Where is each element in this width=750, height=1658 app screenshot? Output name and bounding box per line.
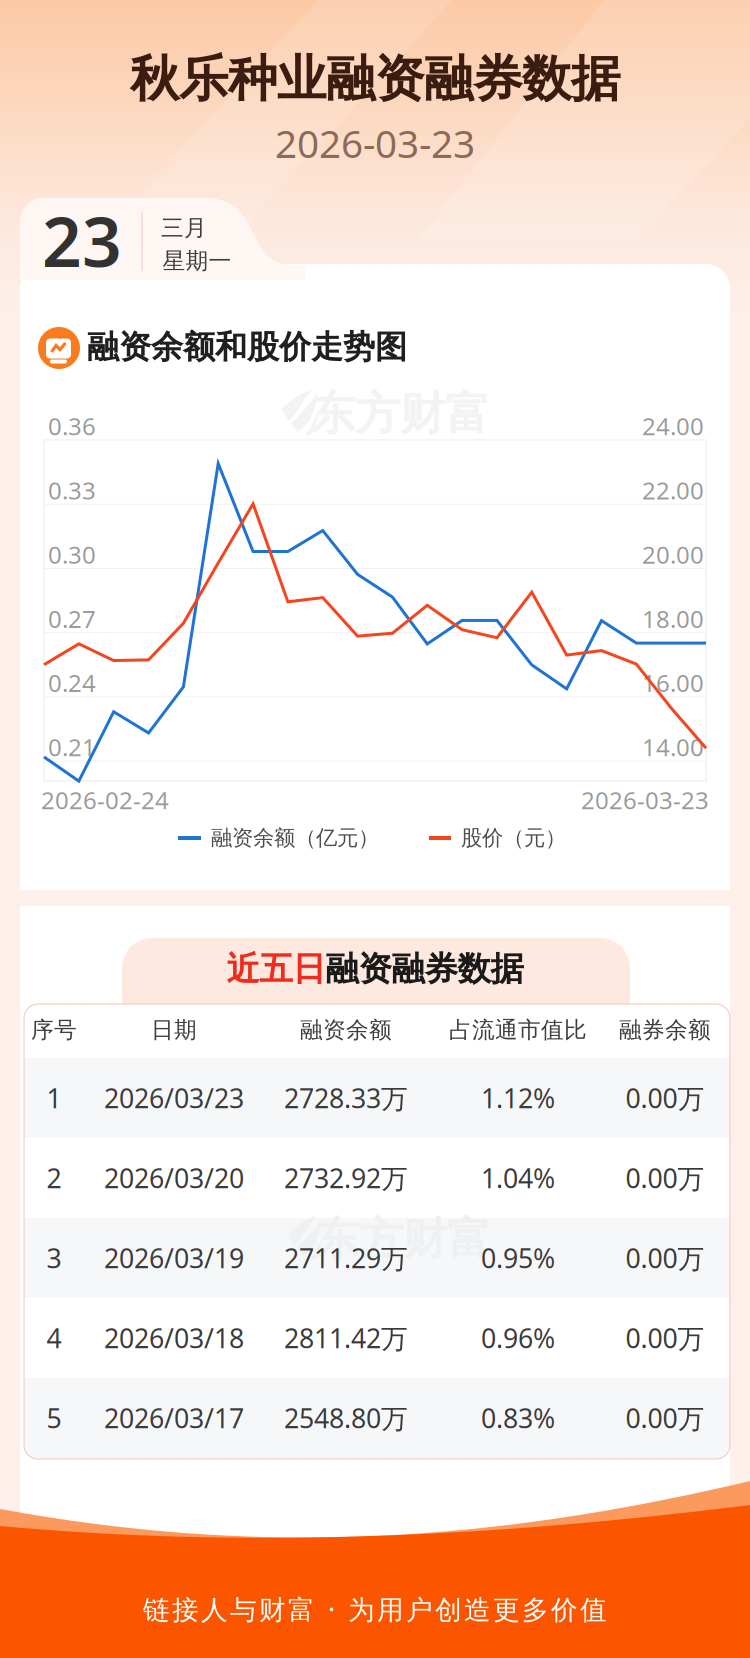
staticText: 1.04% [481, 1160, 555, 1196]
staticText: 22.00 [642, 474, 704, 506]
staticText: 0.83% [481, 1400, 555, 1436]
staticText: 1.12% [481, 1080, 555, 1116]
staticText: 2026/03/20 [104, 1160, 244, 1196]
staticText: 0.21 [48, 731, 96, 763]
staticText: 2728.33万 [284, 1080, 408, 1116]
staticText: 0.33 [48, 474, 96, 506]
staticText: 2732.92万 [284, 1160, 408, 1196]
staticText: 融资余额 [300, 1016, 392, 1044]
staticText: 0.00万 [625, 1080, 704, 1116]
staticText: 0.96% [481, 1320, 555, 1356]
staticText: 0.00万 [625, 1320, 704, 1356]
staticText: 近五日 [226, 948, 325, 989]
staticText: 三月 [161, 214, 207, 242]
staticText: 0.30 [48, 538, 96, 570]
staticText: 2811.42万 [284, 1320, 408, 1356]
staticText: 18.00 [642, 603, 704, 635]
staticText: 融资余额和股价走势图 [87, 327, 407, 367]
staticText: 0.27 [48, 603, 96, 635]
staticText: 链 接 人 与 财 富 · 为 用 户 创 造 更 多 价 值 [143, 1591, 607, 1627]
staticText: 融券余额 [619, 1016, 711, 1044]
staticText: 2 [46, 1160, 61, 1196]
staticText: 2026-03-23 [581, 784, 709, 816]
staticText: 0.00万 [625, 1400, 704, 1436]
staticText: 0.24 [48, 667, 96, 699]
staticText: 20.00 [642, 538, 704, 570]
staticText: 0.00万 [625, 1240, 704, 1276]
staticText: 融资余额（亿元） [211, 825, 379, 851]
staticText: 东方财富 [310, 386, 490, 442]
staticText: 16.00 [642, 667, 704, 699]
staticText: 2026/03/19 [104, 1240, 244, 1276]
staticText: 4 [46, 1320, 61, 1356]
staticText: 2026-02-24 [41, 784, 169, 816]
staticText: 0.36 [48, 410, 96, 442]
staticText: 14.00 [642, 731, 704, 763]
staticText: 序号 [31, 1016, 77, 1044]
staticText: 融资融券数据 [325, 948, 523, 989]
staticText: 股价（元） [461, 825, 566, 851]
staticText: 2548.80万 [284, 1400, 408, 1436]
staticText: 2026-03-23 [275, 117, 475, 169]
staticText: 0.95% [481, 1240, 555, 1276]
staticText: 24.00 [642, 410, 704, 442]
staticText: 23 [42, 194, 122, 286]
staticText: 3 [46, 1240, 61, 1276]
staticText: 2711.29万 [284, 1240, 408, 1276]
staticText: 1 [46, 1080, 61, 1116]
staticText: 秋乐种业融资融券数据 [130, 49, 620, 109]
staticText: 2026/03/23 [104, 1080, 244, 1116]
staticText: 东方财富 [315, 1212, 491, 1266]
staticText: 2026/03/17 [104, 1400, 244, 1436]
staticText: 5 [46, 1400, 61, 1436]
staticText: 占流通市值比 [449, 1016, 587, 1044]
staticText: 日期 [151, 1016, 197, 1044]
staticText: 0.00万 [625, 1160, 704, 1196]
staticText: 2026/03/18 [104, 1320, 244, 1356]
staticText: 星期一 [162, 247, 231, 275]
